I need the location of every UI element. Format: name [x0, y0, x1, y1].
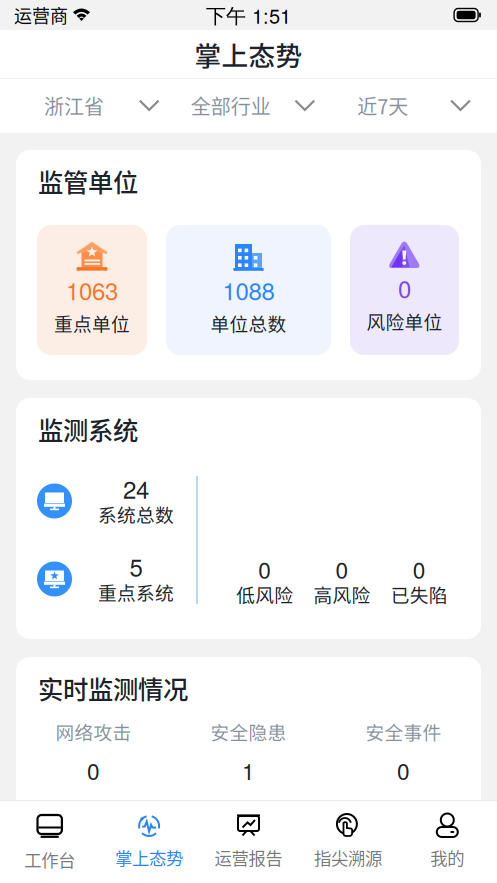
- staticText: 运营报告: [214, 845, 282, 870]
- staticText: 指尖溯源: [314, 845, 382, 870]
- staticText: 全部行业: [191, 91, 271, 120]
- staticText: 系统总数: [98, 500, 174, 527]
- staticText: 掌上态势: [115, 845, 183, 870]
- staticText: 高风险: [313, 580, 370, 607]
- button[interactable]: 全部行业: [166, 78, 331, 133]
- staticText: 监测系统: [38, 411, 138, 447]
- staticText: 0: [258, 553, 271, 585]
- staticText: 0: [398, 271, 411, 305]
- staticText: 低风险: [236, 580, 293, 607]
- button[interactable]: 0: [350, 225, 459, 355]
- staticText: 重点单位: [54, 309, 130, 336]
- staticText: 掌上态势: [194, 35, 302, 73]
- staticText: 0: [335, 553, 348, 585]
- staticText: 安全隐患: [210, 718, 286, 745]
- button[interactable]: 运营报告: [199, 801, 298, 883]
- button[interactable]: 我的: [398, 801, 497, 883]
- staticText: 已失陷: [391, 580, 448, 607]
- staticText: 1063: [66, 273, 118, 307]
- staticText: 安全事件: [365, 718, 441, 745]
- staticText: 单位总数: [210, 309, 286, 336]
- staticText: 运营商: [14, 2, 68, 28]
- staticText: 重点系统: [98, 578, 174, 605]
- staticText: 实时监测情况: [38, 670, 188, 706]
- button[interactable]: 近7天: [331, 78, 497, 133]
- button[interactable]: 掌上态势: [99, 801, 199, 883]
- staticText: 风险单位: [366, 307, 442, 334]
- staticText: 下午 1:51: [206, 1, 291, 29]
- staticText: 0: [397, 754, 410, 786]
- button[interactable]: 指尖溯源: [298, 801, 398, 883]
- button[interactable]: 1063: [37, 225, 147, 355]
- staticText: 监管单位: [38, 163, 138, 199]
- staticText: 网络攻击: [55, 718, 131, 745]
- staticText: 工作台: [24, 847, 75, 872]
- button[interactable]: 1088: [166, 225, 331, 355]
- button[interactable]: 浙江省: [0, 78, 166, 133]
- staticText: 浙江省: [44, 91, 104, 120]
- staticText: 24: [123, 471, 149, 506]
- staticText: 我的: [430, 845, 464, 870]
- staticText: 0: [87, 754, 100, 786]
- staticText: 1088: [222, 273, 274, 307]
- staticText: 0: [413, 553, 426, 585]
- staticText: 5: [129, 549, 142, 584]
- button[interactable]: 工作台: [0, 801, 99, 883]
- staticText: 1: [242, 754, 255, 786]
- staticText: 近7天: [357, 91, 408, 120]
